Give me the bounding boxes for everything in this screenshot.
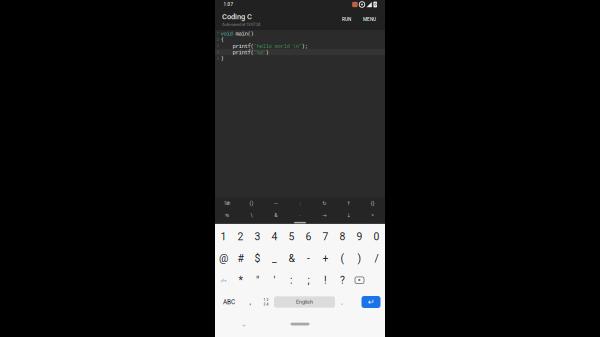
button[interactable]: 6 [300, 226, 317, 247]
staticText: _ [272, 252, 277, 264]
staticText: ↓ [347, 212, 351, 218]
staticText: 9 [356, 230, 362, 243]
button[interactable]: 9 [351, 226, 368, 247]
button[interactable]: () [239, 197, 264, 221]
staticText: 3 [254, 230, 260, 243]
button[interactable]: 1 [215, 226, 232, 247]
staticText: ' [273, 274, 275, 286]
button[interactable]: ↻ [312, 197, 336, 221]
button[interactable]: Enter [361, 296, 380, 308]
button[interactable]: # [232, 247, 249, 269]
button[interactable]: 2 [232, 226, 249, 247]
staticText: — [274, 200, 278, 206]
staticText: & [288, 252, 294, 264]
staticText: ( [340, 252, 344, 264]
staticText: Coding C [222, 12, 252, 21]
staticText: 5 [288, 230, 294, 243]
staticText: ; [307, 274, 309, 286]
button[interactable]: - [300, 247, 317, 269]
button[interactable]: + [317, 247, 334, 269]
button[interactable]: English [274, 296, 335, 308]
button[interactable]: 0 [368, 226, 385, 247]
button[interactable]: , [242, 291, 258, 313]
button[interactable]: " [249, 269, 266, 291]
button[interactable]: Hide keyboard [236, 317, 252, 331]
button[interactable]: 5 [283, 226, 300, 247]
staticText: 0 [373, 230, 379, 243]
button[interactable]: 4 [266, 226, 283, 247]
staticText: Tab [224, 201, 231, 206]
button[interactable]: Symbols [215, 269, 232, 291]
button[interactable]: / [368, 247, 385, 269]
staticText: ? [340, 274, 345, 286]
staticText: 1 [217, 31, 219, 36]
staticText: @ [219, 252, 228, 264]
staticText: () [249, 200, 253, 206]
staticText: + [322, 252, 328, 264]
staticText: » [371, 212, 374, 218]
button[interactable]: @ [215, 247, 232, 269]
staticText: . [341, 298, 343, 306]
staticText: ↑ [347, 200, 351, 206]
button[interactable]: ABC [216, 291, 242, 313]
staticText: ↹ [225, 213, 229, 218]
button[interactable]: ? [334, 269, 351, 291]
staticText: * [238, 274, 242, 286]
staticText: 7 [322, 230, 328, 243]
button[interactable]: & [283, 247, 300, 269]
staticText: MENU [363, 17, 376, 22]
button[interactable]: ' [266, 269, 283, 291]
staticText: ! [324, 274, 327, 286]
staticText: # [237, 252, 243, 264]
button[interactable]: 3 [249, 226, 266, 247]
button[interactable]: _ [266, 247, 283, 269]
staticText: RUN [342, 17, 351, 22]
button[interactable]: * [232, 269, 249, 291]
button[interactable]: RUN [340, 13, 353, 26]
staticText: 3 4 [263, 302, 268, 306]
staticText: - [307, 252, 310, 264]
staticText: 5 [217, 56, 219, 61]
staticText: =\< [220, 278, 226, 283]
button[interactable]: . [335, 291, 349, 313]
staticText: × [358, 277, 361, 283]
staticText: main() [236, 29, 254, 37]
staticText: "%d" [254, 48, 266, 56]
button[interactable]: $ [249, 247, 266, 269]
staticText: printf( [221, 48, 254, 56]
button[interactable]: — [264, 197, 288, 221]
staticText: "hello world \n" [254, 42, 302, 50]
button[interactable]: ; [300, 269, 317, 291]
button[interactable]: MENU [362, 13, 377, 26]
button[interactable]: ↑ [336, 197, 361, 221]
staticText: : [290, 274, 293, 286]
staticText: 2 [217, 37, 219, 42]
staticText: void [221, 29, 236, 37]
staticText: ); [302, 42, 308, 50]
staticText: → [322, 212, 326, 218]
staticText: 6 [305, 230, 311, 243]
button[interactable]: Tab [215, 197, 239, 221]
button[interactable]: Backspace [351, 269, 368, 291]
staticText: ↻ [322, 200, 326, 206]
button[interactable]: ) [351, 247, 368, 269]
button[interactable]: {} [361, 197, 385, 221]
button[interactable]: : [283, 269, 300, 291]
button[interactable]: 8 [334, 226, 351, 247]
staticText: \ [250, 212, 252, 218]
staticText: } [221, 55, 224, 62]
staticText: 1 [220, 230, 226, 243]
button[interactable]: Numeric keypad [258, 291, 274, 313]
button[interactable]: 7 [317, 226, 334, 247]
staticText: 4 [271, 230, 277, 243]
staticText: 1:07 [223, 2, 233, 7]
staticText: $ [254, 252, 260, 264]
button[interactable]: ! [317, 269, 334, 291]
button[interactable]: ( [334, 247, 351, 269]
staticText: English [296, 299, 313, 305]
staticText: ↵ [367, 297, 374, 307]
staticText: { [221, 36, 224, 43]
staticText: 8 [339, 230, 345, 243]
staticText: printf( [221, 42, 254, 50]
